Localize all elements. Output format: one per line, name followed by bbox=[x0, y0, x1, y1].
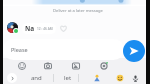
button[interactable]: Expand toolbar bbox=[7, 73, 17, 83]
button[interactable]: Camera bbox=[42, 60, 53, 71]
button[interactable]: Sticker bbox=[70, 60, 81, 71]
staticText: and bbox=[31, 74, 42, 82]
button[interactable]: Settings bbox=[98, 60, 109, 71]
button[interactable]: let bbox=[57, 72, 78, 84]
button[interactable]: Send bbox=[123, 40, 145, 62]
button[interactable]: Na bbox=[22, 23, 56, 34]
button[interactable]: Voice input bbox=[130, 73, 140, 83]
staticText: Na bbox=[25, 24, 35, 33]
staticText: Please bbox=[11, 46, 28, 53]
button[interactable]: Emoji bbox=[16, 60, 27, 71]
button[interactable]: Please bbox=[3, 39, 124, 60]
staticText: 12 : 46 AM bbox=[37, 27, 53, 31]
button[interactable]: Emoji suggestion 2 bbox=[115, 73, 125, 83]
staticText: let bbox=[64, 74, 72, 82]
staticText: Deliver at a later message bbox=[53, 8, 103, 14]
button[interactable]: and bbox=[19, 72, 53, 84]
button[interactable]: Like bbox=[58, 23, 69, 34]
button[interactable]: Emoji suggestion 1 bbox=[92, 73, 102, 83]
